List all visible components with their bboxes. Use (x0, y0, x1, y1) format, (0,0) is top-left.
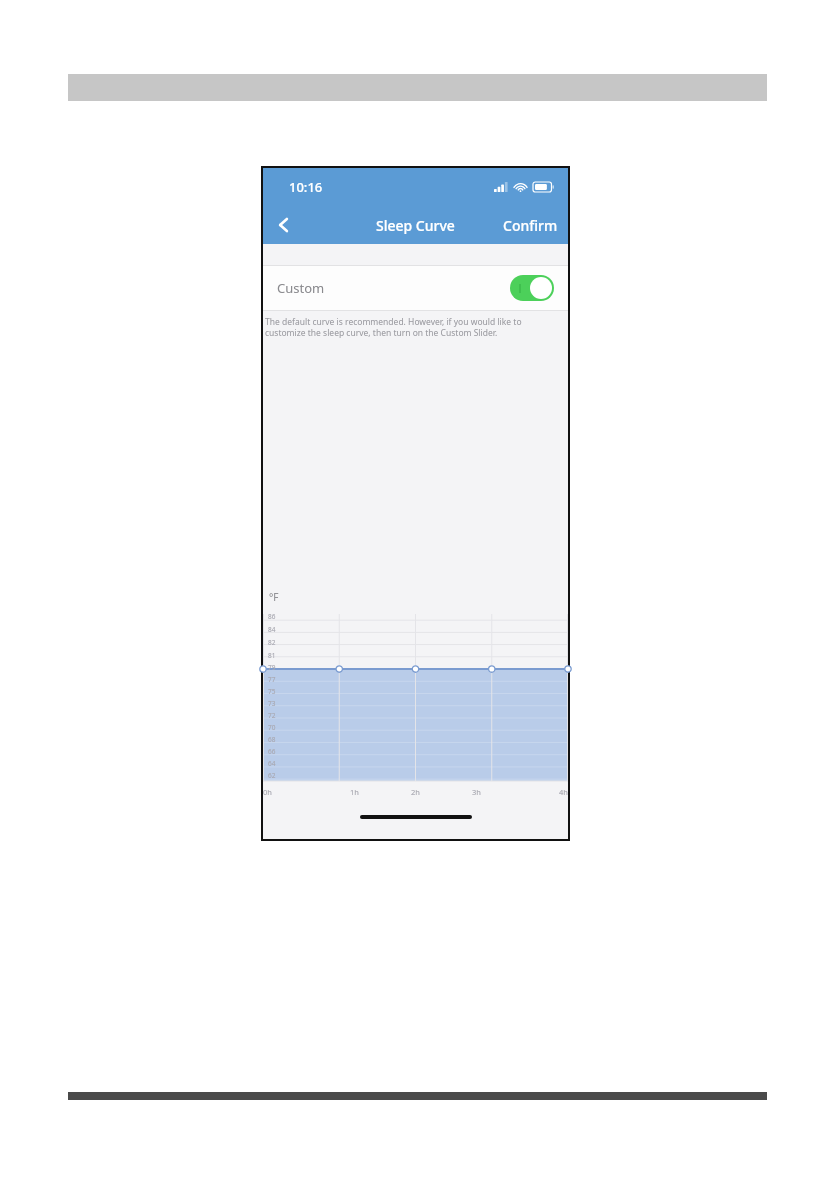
staticText: 66 (268, 747, 276, 756)
staticText: 81 (268, 651, 276, 660)
button[interactable]: Custom (263, 266, 568, 310)
button[interactable]: Confirm (493, 206, 568, 244)
staticText: 72 (268, 711, 276, 720)
staticText: °F (269, 590, 279, 604)
staticText: 62 (268, 771, 276, 780)
staticText: 64 (268, 759, 276, 768)
staticText: 77 (268, 675, 276, 684)
staticText: 2h (411, 787, 420, 797)
staticText: 73 (268, 699, 276, 708)
staticText: 75 (268, 687, 276, 696)
staticText: 0h (263, 787, 272, 797)
staticText: 82 (268, 638, 276, 647)
staticText: 84 (268, 625, 276, 634)
staticText: 4h (559, 787, 568, 797)
staticText: 10:16 (289, 178, 323, 196)
staticText: The default curve is recommended. Howeve… (265, 316, 562, 338)
staticText: 68 (268, 735, 276, 744)
staticText: 3h (472, 787, 481, 797)
staticText: Custom (277, 279, 325, 297)
staticText: Sleep Curve (376, 216, 455, 235)
staticText: Confirm (503, 216, 558, 235)
staticText: 86 (268, 612, 276, 621)
staticText: 70 (268, 723, 276, 732)
button[interactable]: Back (263, 206, 305, 244)
staticText: 1h (350, 787, 359, 797)
staticText: 79 (268, 663, 276, 672)
button[interactable]: Custom toggle, on (510, 275, 554, 301)
